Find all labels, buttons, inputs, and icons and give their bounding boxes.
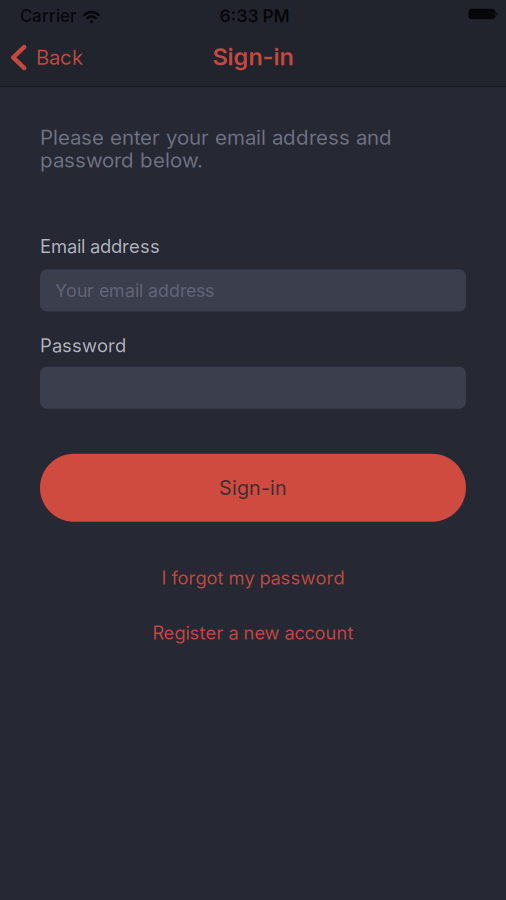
button[interactable]: Back <box>10 44 83 70</box>
button[interactable]: Register a new account <box>152 622 353 644</box>
staticText: Please enter your email address and pass… <box>40 126 392 171</box>
staticText: I forgot my password <box>161 567 344 589</box>
staticText: Sign-in <box>219 476 287 500</box>
button[interactable]: I forgot my password <box>161 567 344 589</box>
staticText: Password <box>40 334 126 357</box>
staticText: 6:33 PM <box>219 5 289 26</box>
button[interactable]: Sign-in <box>40 454 466 522</box>
button[interactable]: Your email address <box>40 269 466 311</box>
staticText: Register a new account <box>152 622 353 644</box>
staticText: Carrier <box>20 6 76 26</box>
staticText: Your email address <box>55 280 214 301</box>
staticText: Sign-in <box>212 42 293 71</box>
staticText: Email address <box>40 235 160 257</box>
staticText: Back <box>36 45 83 70</box>
